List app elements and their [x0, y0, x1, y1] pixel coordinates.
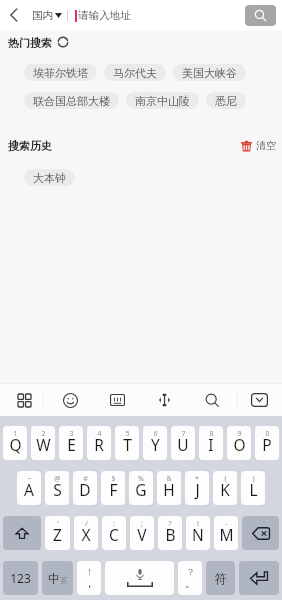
button[interactable]: :: [102, 516, 126, 550]
button[interactable]: 清空: [241, 139, 276, 152]
staticText: 请输入地址: [78, 9, 131, 22]
staticText: M: [219, 524, 234, 545]
button[interactable]: Move cursor: [148, 384, 180, 416]
button[interactable]: Shift: [3, 516, 41, 550]
button[interactable]: 大本钟: [24, 169, 75, 186]
staticText: 7: [181, 429, 186, 439]
button[interactable]: 3: [59, 426, 83, 460]
button[interactable]: 9: [227, 426, 251, 460]
button[interactable]: Enter: [239, 561, 279, 595]
staticText: ?: [168, 519, 172, 529]
staticText: R: [94, 434, 104, 455]
button[interactable]: 8: [199, 426, 223, 460]
staticText: #: [83, 474, 88, 484]
staticText: G: [135, 479, 147, 500]
staticText: 5: [125, 429, 130, 439]
staticText: 国内: [32, 9, 53, 22]
staticText: P: [262, 434, 272, 455]
button[interactable]: ): [241, 471, 265, 505]
button[interactable]: 南京中山陵: [126, 92, 199, 109]
staticText: 联合国总部大楼: [33, 94, 110, 108]
staticText: 8: [209, 429, 214, 439]
staticText: -: [225, 519, 228, 529]
staticText: 符: [215, 571, 227, 586]
staticText: 搜索历史: [8, 139, 52, 152]
staticText: H: [163, 479, 175, 500]
button[interactable]: Hide keyboard: [243, 384, 275, 416]
button[interactable]: /: [74, 516, 98, 550]
button[interactable]: Apps: [8, 384, 40, 416]
button[interactable]: 中: [42, 561, 73, 595]
staticText: 123: [10, 570, 31, 586]
button[interactable]: $: [101, 471, 125, 505]
staticText: *: [195, 474, 199, 484]
button[interactable]: ！: [77, 561, 101, 595]
button[interactable]: 1: [3, 426, 27, 460]
button[interactable]: %: [129, 471, 153, 505]
staticText: 。: [185, 576, 196, 590]
button[interactable]: 马尔代夫: [104, 64, 166, 81]
button[interactable]: *: [185, 471, 209, 505]
staticText: 中: [48, 571, 60, 586]
button[interactable]: Backspace: [242, 516, 279, 550]
button[interactable]: #: [73, 471, 97, 505]
button[interactable]: ?: [158, 516, 182, 550]
button[interactable]: ': [45, 516, 70, 550]
button[interactable]: Clipboard: [101, 384, 133, 416]
button[interactable]: ？: [178, 561, 202, 595]
staticText: @: [54, 474, 61, 484]
staticText: U: [177, 434, 189, 455]
button[interactable]: 0: [255, 426, 279, 460]
button[interactable]: ~: [17, 471, 41, 505]
staticText: D: [79, 479, 91, 500]
button[interactable]: Back: [4, 3, 24, 27]
staticText: X: [81, 524, 91, 545]
button[interactable]: 123: [3, 561, 38, 595]
staticText: Y: [151, 434, 160, 455]
button[interactable]: 符: [206, 561, 235, 595]
button[interactable]: 5: [115, 426, 139, 460]
button[interactable]: ;: [130, 516, 154, 550]
button[interactable]: -: [214, 516, 238, 550]
staticText: ;: [141, 519, 143, 529]
staticText: 悉尼: [215, 94, 237, 108]
button[interactable]: Search: [196, 384, 228, 416]
staticText: ，: [84, 576, 95, 590]
staticText: Q: [9, 434, 22, 455]
staticText: 1: [13, 429, 18, 439]
staticText: ): [252, 474, 255, 484]
staticText: ~: [27, 474, 32, 484]
staticText: 清空: [256, 139, 276, 152]
button[interactable]: 悉尼: [206, 92, 246, 109]
button[interactable]: 埃菲尔铁塔: [24, 64, 97, 81]
staticText: 9: [237, 429, 242, 439]
button[interactable]: &: [157, 471, 181, 505]
button[interactable]: 国内: [32, 9, 62, 22]
button[interactable]: Refresh: [56, 36, 70, 48]
button[interactable]: Search: [245, 5, 276, 26]
staticText: I: [208, 434, 214, 455]
button[interactable]: (: [213, 471, 237, 505]
button[interactable]: 2: [31, 426, 55, 460]
button[interactable]: Space: [105, 561, 174, 595]
staticText: /: [85, 519, 88, 529]
button[interactable]: !: [186, 516, 210, 550]
button[interactable]: 7: [171, 426, 195, 460]
staticText: A: [24, 479, 34, 500]
button[interactable]: 联合国总部大楼: [24, 92, 119, 109]
staticText: 马尔代夫: [113, 66, 157, 80]
button[interactable]: Emoji: [54, 384, 86, 416]
staticText: C: [109, 524, 119, 545]
staticText: K: [220, 479, 230, 500]
button[interactable]: 6: [143, 426, 167, 460]
staticText: 英: [60, 576, 68, 585]
button[interactable]: @: [45, 471, 69, 505]
staticText: O: [233, 434, 246, 455]
staticText: ': [57, 519, 59, 529]
staticText: (: [224, 474, 227, 484]
staticText: V: [137, 524, 147, 545]
button[interactable]: 4: [87, 426, 111, 460]
staticText: T: [123, 434, 132, 455]
staticText: E: [67, 434, 76, 455]
button[interactable]: 美国大峡谷: [173, 64, 246, 81]
